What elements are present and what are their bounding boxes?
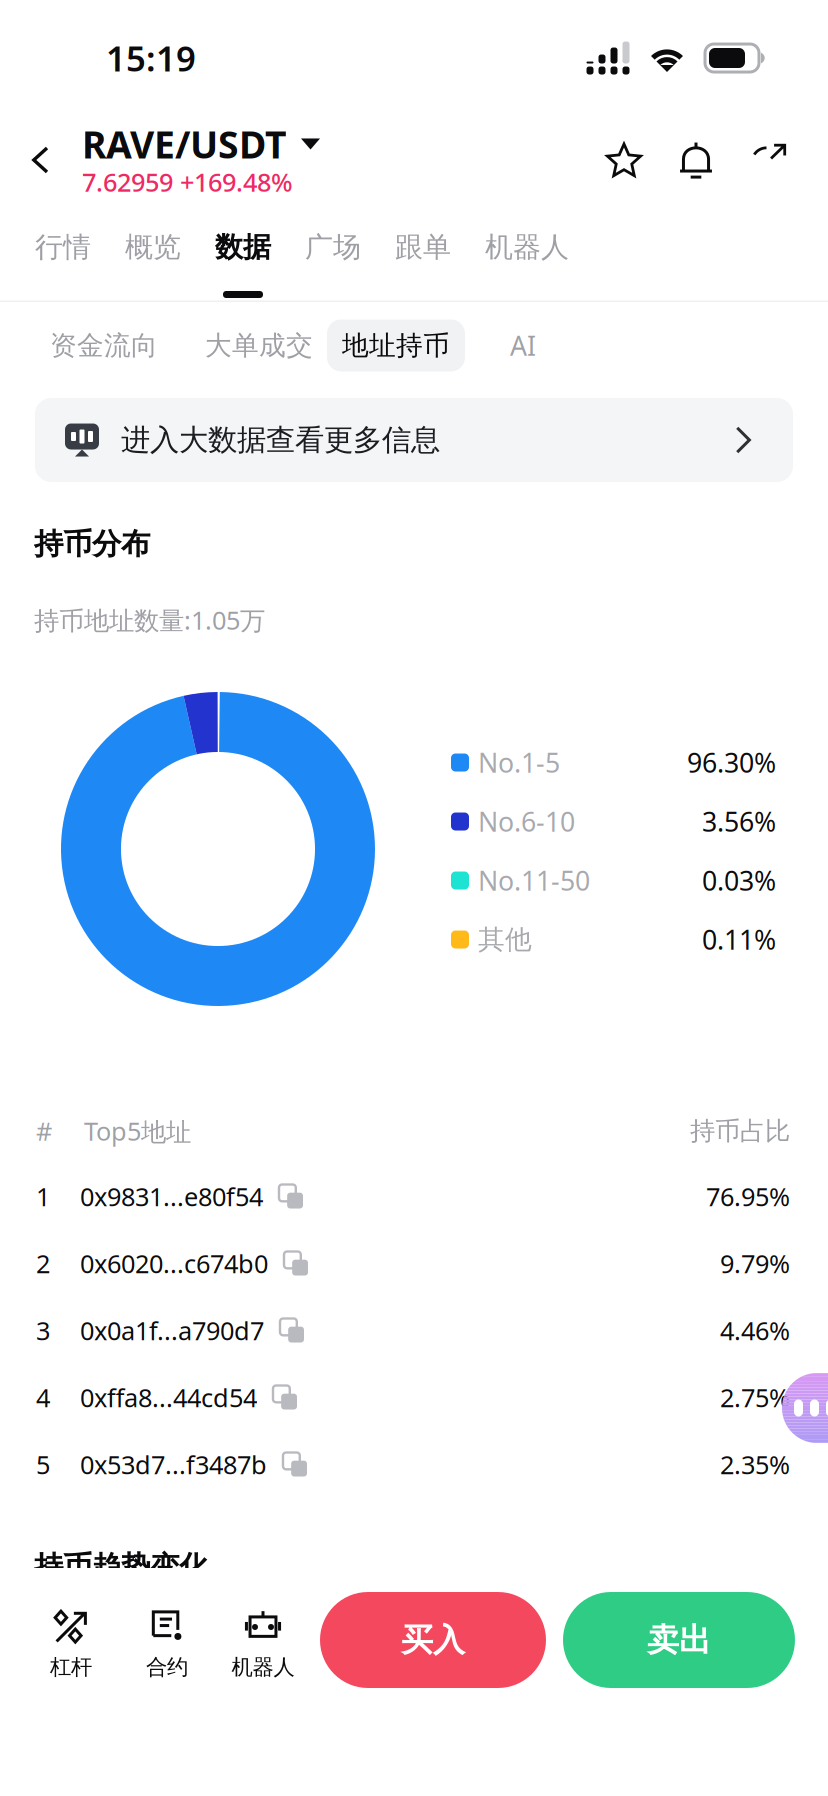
button[interactable]: 杠杆 bbox=[23, 1592, 119, 1688]
staticText: 持币分布 bbox=[34, 526, 150, 562]
button[interactable]: 机器人 bbox=[468, 200, 586, 306]
staticText: 2.75% bbox=[720, 1381, 790, 1414]
staticText: 15:19 bbox=[106, 35, 196, 81]
button[interactable]: 地址持币 bbox=[327, 319, 465, 371]
staticText: 0xffa8...44cd54 bbox=[80, 1381, 257, 1414]
button[interactable]: 数据 bbox=[198, 200, 288, 306]
staticText: 4.46% bbox=[720, 1314, 790, 1347]
button[interactable]: 跟单 bbox=[378, 200, 468, 306]
button[interactable]: 合约 bbox=[119, 1592, 215, 1688]
staticText: 0x53d7...f3487b bbox=[80, 1448, 267, 1481]
staticText: 进入大数据查看更多信息 bbox=[121, 422, 440, 458]
staticText: 3.56% bbox=[702, 804, 776, 839]
button[interactable]: 买入 bbox=[320, 1592, 546, 1688]
staticText: 0.03% bbox=[702, 863, 776, 898]
staticText: # bbox=[36, 1114, 52, 1148]
staticText: 持币趋势变化 bbox=[34, 1549, 208, 1585]
button[interactable]: Back bbox=[0, 116, 82, 204]
staticText: No.1-5 bbox=[478, 745, 560, 780]
staticText: 2 bbox=[36, 1247, 50, 1280]
staticText: 0x9831...e80f54 bbox=[80, 1180, 263, 1213]
button[interactable]: Favorite bbox=[597, 130, 651, 190]
staticText: 7.62959 +169.48% bbox=[82, 165, 293, 199]
button[interactable]: Price alert bbox=[669, 130, 723, 190]
staticText: 76.95% bbox=[706, 1180, 790, 1213]
staticText: 9.79% bbox=[720, 1247, 790, 1280]
button[interactable]: 大单成交 bbox=[196, 319, 322, 371]
staticText: 0x6020...c674b0 bbox=[80, 1247, 268, 1280]
button[interactable]: 进入大数据查看更多信息 bbox=[35, 398, 793, 482]
staticText: 1 bbox=[36, 1180, 50, 1213]
staticText: No.11-50 bbox=[478, 863, 590, 898]
staticText: AI bbox=[510, 328, 536, 363]
staticText: 广场 bbox=[305, 230, 361, 264]
button[interactable]: AI bbox=[497, 319, 549, 371]
button[interactable]: 机器人 bbox=[215, 1592, 311, 1688]
staticText: Top5地址 bbox=[84, 1114, 191, 1148]
button[interactable]: 广场 bbox=[288, 200, 378, 306]
staticText: 持币地址数量:1.05万 bbox=[34, 603, 265, 637]
button[interactable]: Share bbox=[741, 130, 795, 190]
button[interactable]: 卖出 bbox=[563, 1592, 795, 1688]
staticText: 跟单 bbox=[395, 230, 451, 264]
staticText: 机器人 bbox=[231, 1654, 294, 1680]
staticText: 5 bbox=[36, 1448, 50, 1481]
staticText: 96.30% bbox=[687, 745, 776, 780]
staticText: 数据 bbox=[215, 230, 271, 264]
staticText: No.6-10 bbox=[478, 804, 575, 839]
button[interactable]: 行情 bbox=[18, 200, 108, 306]
staticText: 卖出 bbox=[647, 1620, 711, 1660]
staticText: 行情 bbox=[35, 230, 91, 264]
staticText: 杠杆 bbox=[50, 1654, 92, 1680]
staticText: 0x0a1f...a790d7 bbox=[80, 1314, 264, 1347]
staticText: 合约 bbox=[146, 1654, 188, 1680]
staticText: 买入 bbox=[401, 1620, 465, 1660]
button[interactable]: 概览 bbox=[108, 200, 198, 306]
staticText: RAVE/USDT bbox=[82, 119, 287, 169]
staticText: 概览 bbox=[125, 230, 181, 264]
staticText: 3 bbox=[36, 1314, 50, 1347]
staticText: 其他 bbox=[478, 923, 532, 956]
staticText: 地址持币 bbox=[342, 329, 450, 362]
staticText: 机器人 bbox=[485, 230, 569, 264]
staticText: 4 bbox=[36, 1381, 50, 1414]
button[interactable]: 资金流向 bbox=[38, 319, 170, 371]
staticText: 2.35% bbox=[720, 1448, 790, 1481]
staticText: 资金流向 bbox=[50, 329, 158, 362]
staticText: 持币占比 bbox=[690, 1115, 790, 1146]
staticText: 大单成交 bbox=[205, 329, 313, 362]
staticText: 0.11% bbox=[702, 922, 776, 957]
